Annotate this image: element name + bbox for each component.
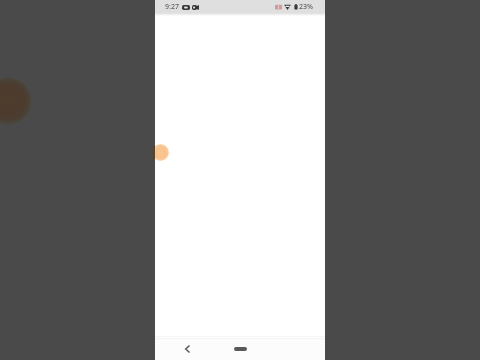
staticText: 23% xyxy=(299,2,313,12)
button[interactable]: Compose xyxy=(155,144,169,161)
button[interactable]: Back xyxy=(180,342,194,356)
staticText: 9:27 xyxy=(165,2,179,12)
button[interactable]: Home xyxy=(223,342,257,356)
